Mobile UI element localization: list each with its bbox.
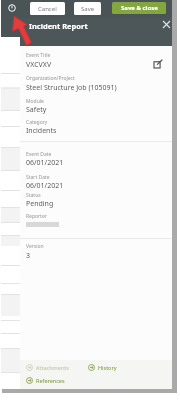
- staticText: History: [98, 364, 117, 371]
- staticText: VXCVXV: [26, 60, 52, 70]
- button[interactable]: Save & close: [112, 2, 166, 14]
- staticText: Category: [26, 119, 48, 126]
- button[interactable]: Open record: [151, 57, 165, 71]
- staticText: Start Date: [26, 174, 50, 181]
- staticText: Incidents: [26, 126, 57, 136]
- button[interactable]: Save: [74, 2, 101, 15]
- staticText: Pending: [26, 199, 54, 209]
- staticText: Cancel: [38, 5, 57, 13]
- staticText: Save & close: [121, 4, 158, 12]
- staticText: Save: [81, 5, 95, 13]
- staticText: Event Title: [26, 52, 51, 59]
- button[interactable]: Info: [8, 4, 16, 12]
- staticText: Attachments: [36, 364, 69, 371]
- staticText: Safety: [26, 105, 47, 115]
- staticText: Event Date: [26, 151, 52, 158]
- button[interactable]: Attachments: [26, 364, 69, 371]
- staticText: Version: [26, 243, 44, 250]
- staticText: 06/01/2021: [26, 181, 64, 191]
- staticText: Steel Structure Job (105091): [26, 83, 117, 93]
- staticText: Organization/Project: [26, 75, 75, 82]
- button[interactable]: History: [88, 364, 117, 371]
- button[interactable]: References: [26, 377, 65, 384]
- staticText: 3: [26, 251, 31, 261]
- button[interactable]: Close: [160, 18, 173, 31]
- staticText: 06/01/2021: [26, 158, 64, 168]
- staticText: Status: [26, 192, 41, 199]
- staticText: Module: [26, 98, 44, 105]
- staticText: Incident Report: [29, 21, 88, 31]
- staticText: Reporter: [26, 213, 47, 220]
- button[interactable]: Cancel: [30, 2, 65, 15]
- staticText: References: [36, 377, 65, 384]
